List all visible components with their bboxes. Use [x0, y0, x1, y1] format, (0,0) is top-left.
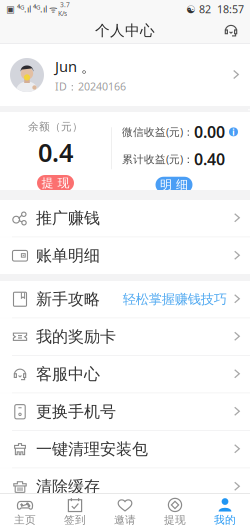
staticText: 0.00 [194, 121, 225, 142]
staticText: 客服中心 [36, 364, 100, 384]
staticText: 3.7 K/s [58, 0, 70, 18]
staticText: 签到 [64, 513, 86, 526]
staticText: 清除缓存 [36, 477, 100, 497]
staticText: 0.4 [38, 135, 73, 169]
button[interactable]: 客服 [219, 18, 243, 42]
staticText: ID：20240166 [55, 79, 126, 93]
staticText: 我的奖励卡 [36, 327, 116, 347]
staticText: 个人中心 [95, 21, 155, 39]
button[interactable]: 提现 [150, 494, 200, 527]
staticText: 明 细 [160, 177, 188, 192]
button[interactable]: 账单明细 [0, 237, 250, 274]
staticText: 一键清理安装包 [36, 439, 148, 459]
button[interactable]: 清除缓存 [0, 468, 250, 505]
staticText: 余额（元） [28, 120, 83, 133]
button[interactable]: 新手攻略 [0, 281, 250, 317]
staticText: 提现 [164, 513, 186, 526]
staticText: ▣ ⁴ᴳ.ıl ⁴ᴳ.ıl ᯤ [6, 3, 58, 15]
button[interactable]: 一键清理安装包 [0, 431, 250, 467]
button[interactable]: 我的奖励卡 [0, 318, 250, 355]
staticText: 账单明细 [36, 246, 100, 266]
staticText: i [232, 126, 235, 138]
button[interactable]: 明 细 [155, 177, 192, 193]
staticText: 微信收益(元)： [122, 125, 194, 139]
button[interactable]: 客服中心 [0, 356, 250, 392]
staticText: 新手攻略 [36, 289, 100, 309]
button[interactable]: Jun 。 [0, 44, 250, 106]
button[interactable]: 提 现 [37, 175, 74, 191]
staticText: 提 现 [41, 176, 69, 190]
staticText: ☯ 82 18:57 [186, 2, 244, 16]
staticText: 邀请 [114, 513, 136, 526]
staticText: 0.40 [194, 148, 225, 170]
staticText: 更换手机号 [36, 402, 116, 422]
button[interactable]: 签到 [50, 494, 100, 527]
staticText: Jun 。 [55, 57, 96, 76]
button[interactable]: 我的 [200, 494, 250, 527]
button[interactable]: 更换手机号 [0, 393, 250, 430]
button[interactable]: 邀请 [100, 494, 150, 527]
staticText: 累计收益(元)： [122, 152, 194, 166]
button[interactable]: 主页 [0, 494, 50, 527]
staticText: 推广赚钱 [36, 208, 100, 228]
staticText: 我的 [214, 513, 236, 526]
staticText: 主页 [14, 513, 36, 526]
staticText: 轻松掌握赚钱技巧 [123, 291, 227, 307]
button[interactable]: 说明 [225, 127, 238, 136]
button[interactable]: 推广赚钱 [0, 200, 250, 236]
